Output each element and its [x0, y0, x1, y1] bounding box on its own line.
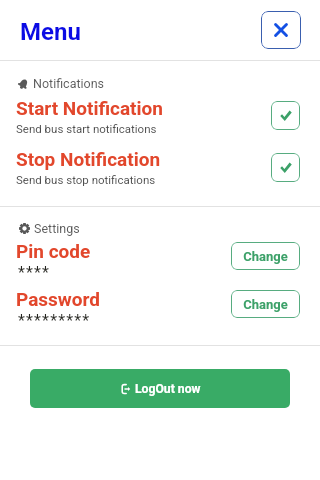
staticText: Send bus start notifications — [16, 122, 157, 135]
button[interactable]: Toggle start notification — [271, 101, 300, 130]
staticText: Password — [16, 288, 100, 310]
staticText: Start Notification — [16, 97, 163, 119]
button[interactable]: Change — [231, 242, 300, 270]
staticText: Menu — [20, 18, 81, 46]
button[interactable]: Change — [231, 290, 300, 318]
staticText: LogOut now — [135, 382, 201, 396]
staticText: ********* — [18, 311, 91, 330]
staticText: Notifications — [33, 76, 105, 91]
staticText: **** — [18, 263, 51, 282]
staticText: Send bus stop notifications — [16, 173, 156, 186]
staticText: Change — [243, 249, 288, 264]
staticText: Stop Notification — [16, 148, 161, 170]
staticText: Pin code — [16, 240, 91, 262]
button[interactable]: Toggle stop notification — [271, 153, 300, 182]
button[interactable]: LogOut now — [30, 369, 290, 408]
staticText: Settings — [34, 221, 80, 236]
staticText: Change — [243, 297, 288, 312]
button[interactable]: Close — [261, 11, 301, 49]
